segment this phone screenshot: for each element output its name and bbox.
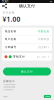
staticText: 温馨提示	[3, 79, 15, 83]
staticText: ¥1.00	[37, 55, 46, 58]
staticText: 支付金额	[2, 11, 14, 14]
staticText: 商户名称	[4, 38, 16, 41]
button[interactable]: Share	[0, 3, 9, 9]
staticText: 确认支付	[21, 70, 33, 73]
staticText: 订单编号	[4, 45, 16, 49]
staticText: 9:41	[2, 0, 9, 3]
staticText: 联系客服	[45, 96, 49, 97]
staticText: 确认支付	[19, 3, 35, 8]
button[interactable]: 零钱支付	[0, 53, 54, 60]
staticText: 示例科技	[37, 38, 49, 41]
staticText: 1. 支付过程中请勿关闭页面	[3, 84, 15, 85]
staticText: ▮▮	[50, 1, 52, 2]
staticText: 月度会员	[37, 30, 49, 33]
staticText: 202401	[37, 45, 49, 49]
staticText: 2. 如遇问题请联系在线客服	[3, 86, 15, 88]
staticText: 3. 支付结果以最终为准	[3, 89, 13, 90]
staticText: ¥1.00	[2, 15, 20, 24]
button[interactable]: 联系客服	[44, 95, 51, 98]
staticText: 零钱支付	[13, 55, 25, 58]
staticText: 商品名称	[4, 30, 16, 33]
button[interactable]: 确认支付	[0, 67, 54, 75]
staticText: 遇到问题？	[3, 96, 8, 97]
